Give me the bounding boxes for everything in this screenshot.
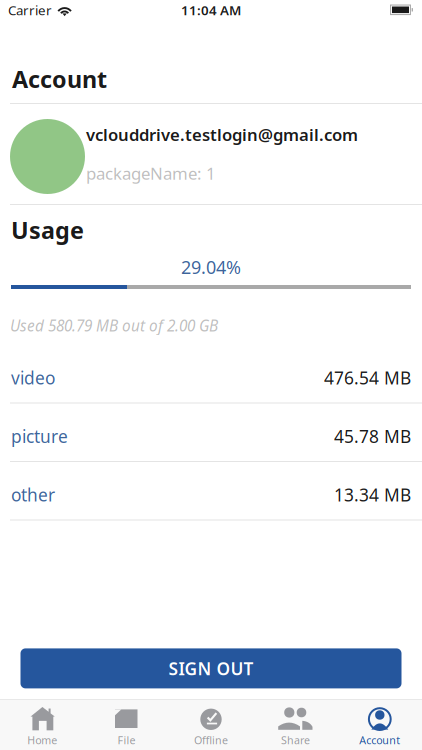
button[interactable]: File <box>84 700 169 750</box>
staticText: 13.34 MB <box>334 483 411 506</box>
staticText: File <box>118 733 136 747</box>
staticText: 476.54 MB <box>324 366 411 389</box>
staticText: Account <box>359 733 400 747</box>
button[interactable]: Share <box>253 700 338 750</box>
button[interactable]: video <box>0 345 422 403</box>
staticText: Share <box>281 733 310 747</box>
staticText: SIGN OUT <box>168 657 253 680</box>
button[interactable]: picture <box>0 403 422 462</box>
button[interactable]: other <box>0 462 422 520</box>
staticText: Carrier <box>8 1 52 19</box>
staticText: Home <box>27 733 57 747</box>
staticText: packageName: 1 <box>86 162 216 185</box>
button[interactable]: Offline <box>169 700 253 750</box>
staticText: Usage <box>11 214 84 246</box>
staticText: video <box>11 366 55 389</box>
staticText: 11:04 AM <box>181 1 241 19</box>
staticText: other <box>11 483 55 506</box>
staticText: Used 580.79 MB out of 2.00 GB <box>10 315 218 336</box>
staticText: 45.78 MB <box>334 425 411 448</box>
button[interactable]: Home <box>0 700 84 750</box>
staticText: Account <box>12 63 107 95</box>
staticText: vclouddrive.testlogin@gmail.com <box>86 123 358 146</box>
button[interactable]: Account <box>338 700 422 750</box>
staticText: Offline <box>194 733 228 747</box>
staticText: picture <box>11 425 68 448</box>
button[interactable]: SIGN OUT <box>20 648 401 688</box>
staticText: 29.04% <box>181 255 241 279</box>
